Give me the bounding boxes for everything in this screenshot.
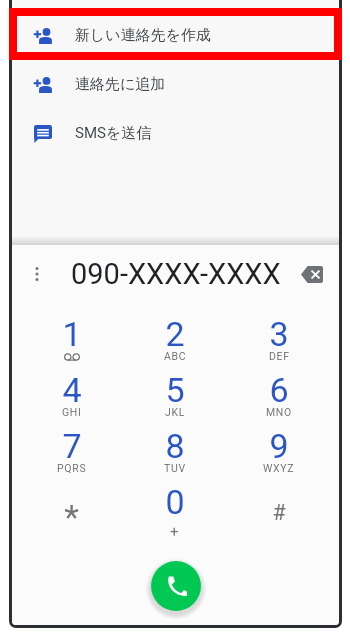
staticText: 0 — [165, 482, 185, 522]
staticText: 新しい連絡先を作成 — [75, 26, 212, 45]
button[interactable]: 4 — [20, 368, 123, 424]
staticText: 3 — [269, 314, 289, 354]
button[interactable]: Call — [151, 561, 201, 611]
staticText: JKL — [165, 406, 186, 418]
staticText: 090-XXXX-XXXX — [71, 257, 281, 291]
staticText: SMSを送信 — [75, 124, 152, 143]
staticText: 連絡先に追加 — [75, 75, 166, 94]
staticText: TUV — [164, 462, 186, 474]
staticText: MNO — [266, 406, 292, 418]
staticText: * — [64, 497, 79, 537]
staticText: # — [272, 500, 286, 525]
staticText: WXYZ — [263, 462, 295, 474]
button[interactable]: Backspace — [297, 259, 327, 289]
button[interactable]: 7 — [20, 424, 123, 480]
staticText: 9 — [269, 426, 289, 466]
button[interactable]: 1 — [20, 312, 123, 368]
button[interactable]: 3 — [227, 312, 331, 368]
button[interactable]: 0 — [123, 480, 227, 536]
staticText: 2 — [165, 314, 185, 354]
button[interactable]: 8 — [123, 424, 227, 480]
staticText: 7 — [62, 426, 82, 466]
staticText: GHI — [62, 406, 82, 418]
button[interactable]: 9 — [227, 424, 331, 480]
button[interactable]: # — [227, 480, 331, 536]
button[interactable]: 5 — [123, 368, 227, 424]
staticText: DEF — [269, 350, 290, 362]
staticText: PQRS — [57, 462, 87, 474]
staticText: 4 — [62, 370, 82, 410]
staticText: 5 — [165, 370, 185, 410]
button[interactable]: More options — [25, 262, 49, 286]
staticText: ABC — [164, 350, 187, 362]
staticText: 6 — [269, 370, 289, 410]
button[interactable]: 新しい連絡先を作成 — [12, 11, 339, 60]
staticText: 1 — [62, 314, 82, 354]
button[interactable]: SMSを送信 — [12, 109, 339, 158]
button[interactable]: 2 — [123, 312, 227, 368]
button[interactable]: 6 — [227, 368, 331, 424]
staticText: 8 — [165, 426, 185, 466]
button[interactable]: * — [20, 480, 123, 536]
staticText: + — [170, 523, 180, 541]
button[interactable]: 連絡先に追加 — [12, 60, 339, 109]
